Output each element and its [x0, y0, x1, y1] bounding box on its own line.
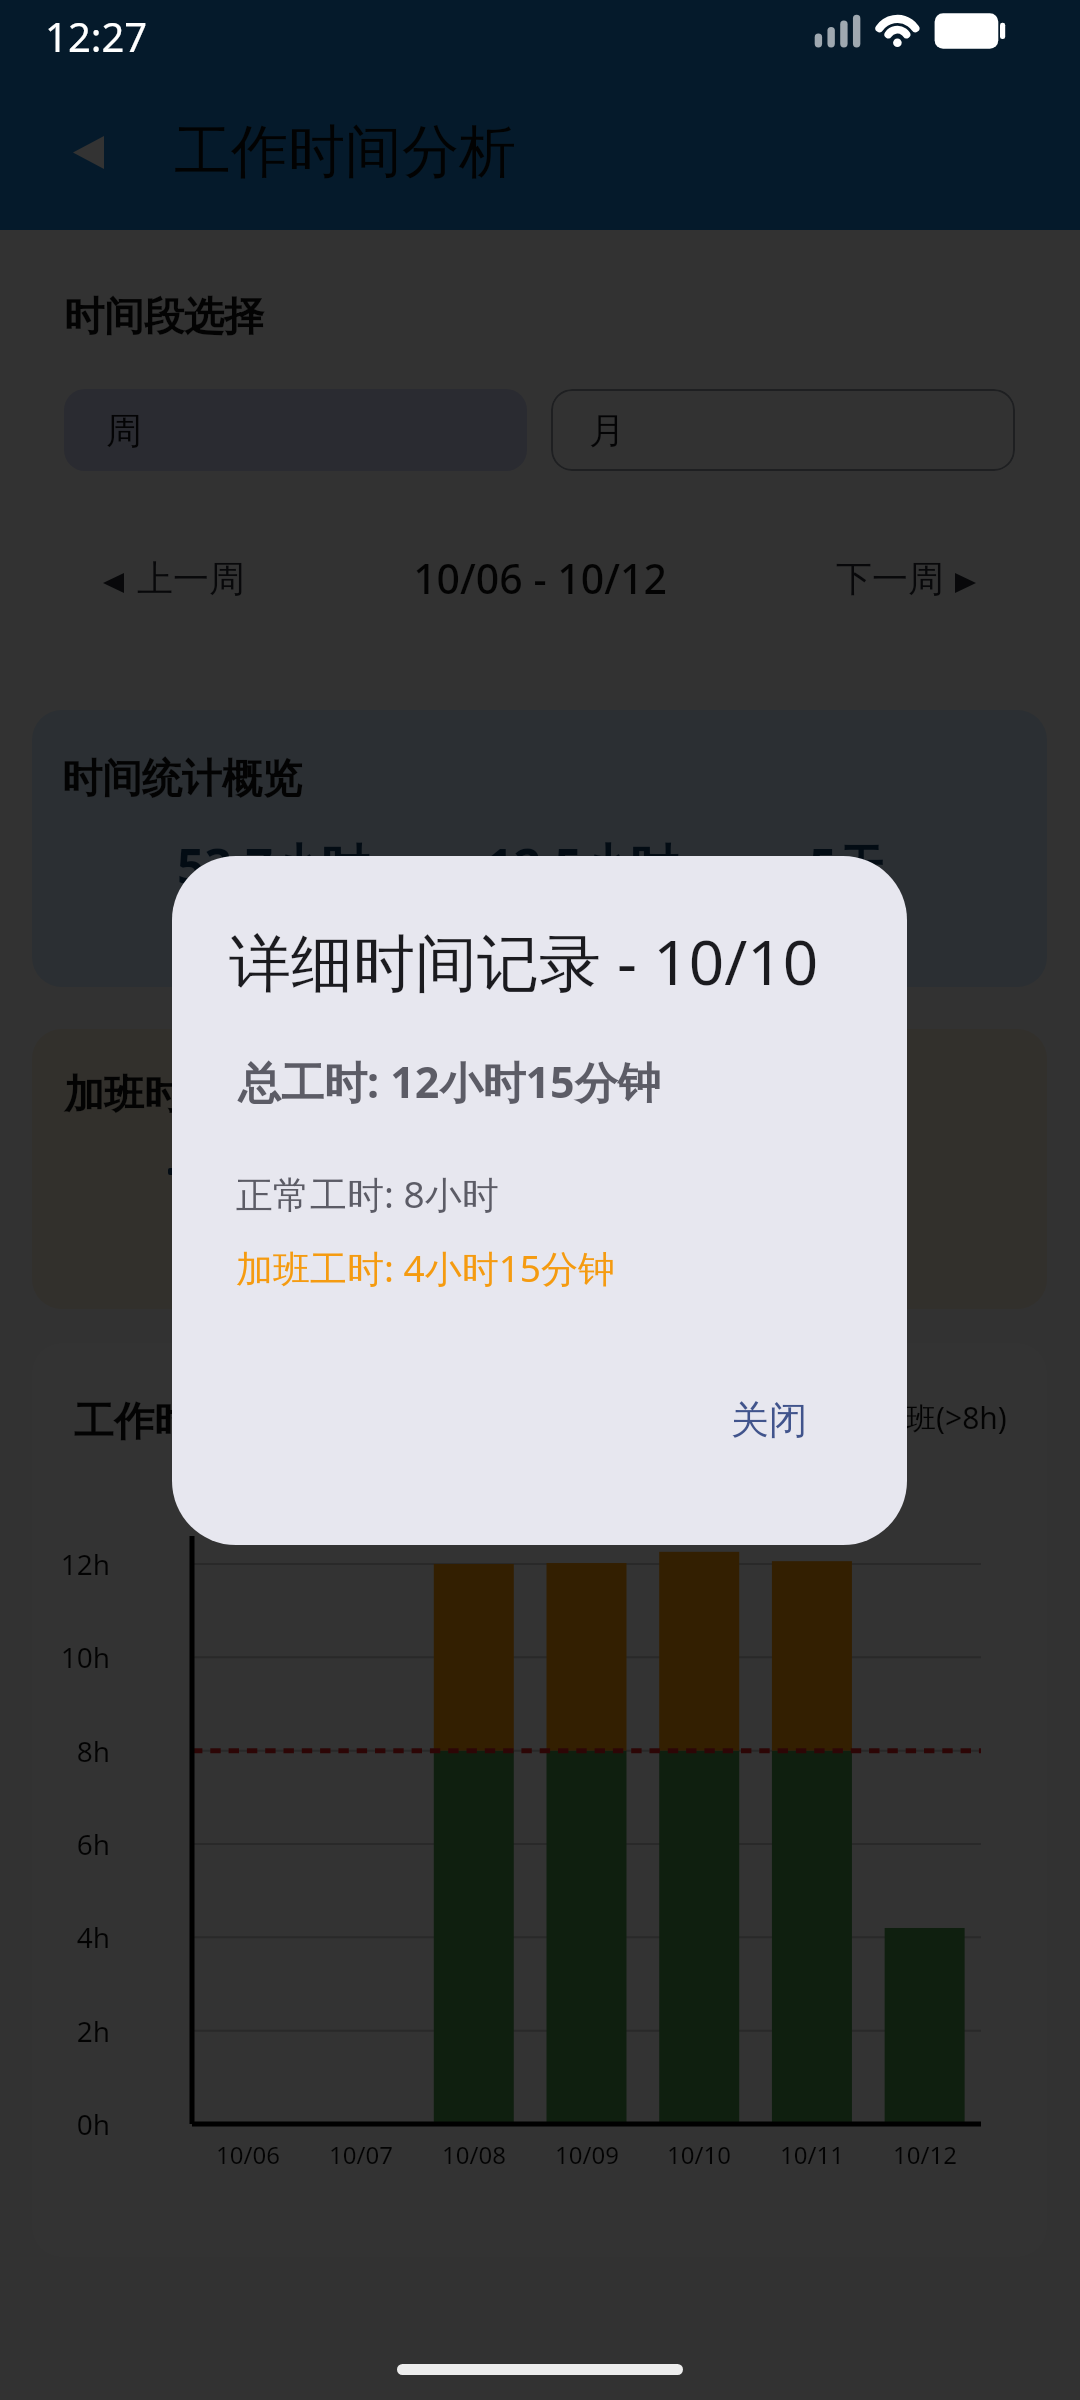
staticText: 加班工时: 4小时15分钟 [236, 1242, 616, 1293]
staticText: 工作时长趋势 [74, 1396, 314, 1446]
button[interactable]: 下一周 [822, 546, 997, 620]
staticText: 正常工时: 8小时 [236, 1168, 499, 1219]
staticText: 总工时: 12小时15分钟 [238, 1052, 661, 1111]
staticText: 详细时间记录 - 10/10 [229, 919, 819, 1004]
staticText: 周 [106, 408, 142, 453]
staticText: 平均每日加班 2.5 小时 [194, 1149, 512, 1193]
staticText: 时间统计概览 [62, 753, 302, 803]
staticText: 4h [0, 1918, 110, 1956]
staticText: 10/09 [517, 2138, 657, 2171]
staticText: 加班(>8h) [876, 1397, 1007, 1435]
staticText: 总工时 [103, 895, 443, 933]
staticText: 10/10 [629, 2138, 769, 2171]
staticText: 12:27 [45, 9, 148, 63]
button[interactable]: 关闭 [709, 1380, 829, 1460]
button[interactable]: 周 [64, 389, 527, 471]
staticText: 月 [589, 408, 625, 453]
staticText: 最长加班 4小时15分钟 [258, 1213, 578, 1257]
staticText: 10/07 [291, 2138, 431, 2171]
staticText: 时间段选择 [64, 291, 264, 341]
staticText: 关闭 [731, 1396, 807, 1444]
staticText: 10/12 [855, 2138, 995, 2171]
staticText: 6h [0, 1825, 110, 1863]
staticText: 10/06 - 10/12 [0, 550, 1080, 606]
staticText: 12h [0, 1545, 110, 1583]
staticText: 53.7小时 [103, 833, 443, 899]
staticText: 10/11 [742, 2138, 882, 2171]
staticText: 12.5小时 [412, 833, 752, 899]
staticText: 10/08 [404, 2138, 544, 2171]
staticText: 上一周 [137, 556, 245, 601]
staticText: 工作时间分析 [174, 116, 516, 188]
staticText: 10/06 [178, 2138, 318, 2171]
staticText: 2h [0, 2012, 110, 2050]
staticText: 10h [0, 1638, 110, 1676]
staticText: 正常 [758, 1397, 818, 1435]
button[interactable]: 上一周 [86, 546, 261, 620]
staticText: 8h [0, 1732, 110, 1770]
staticText: 下一周 [836, 556, 944, 601]
button[interactable]: Back [33, 97, 143, 207]
staticText: 工作天数 [677, 895, 1017, 933]
staticText: 加班时长统计 [64, 1069, 304, 1119]
staticText: 5天 [677, 833, 1017, 899]
button[interactable]: 月 [551, 389, 1015, 471]
staticText: 0h [0, 2105, 110, 2143]
